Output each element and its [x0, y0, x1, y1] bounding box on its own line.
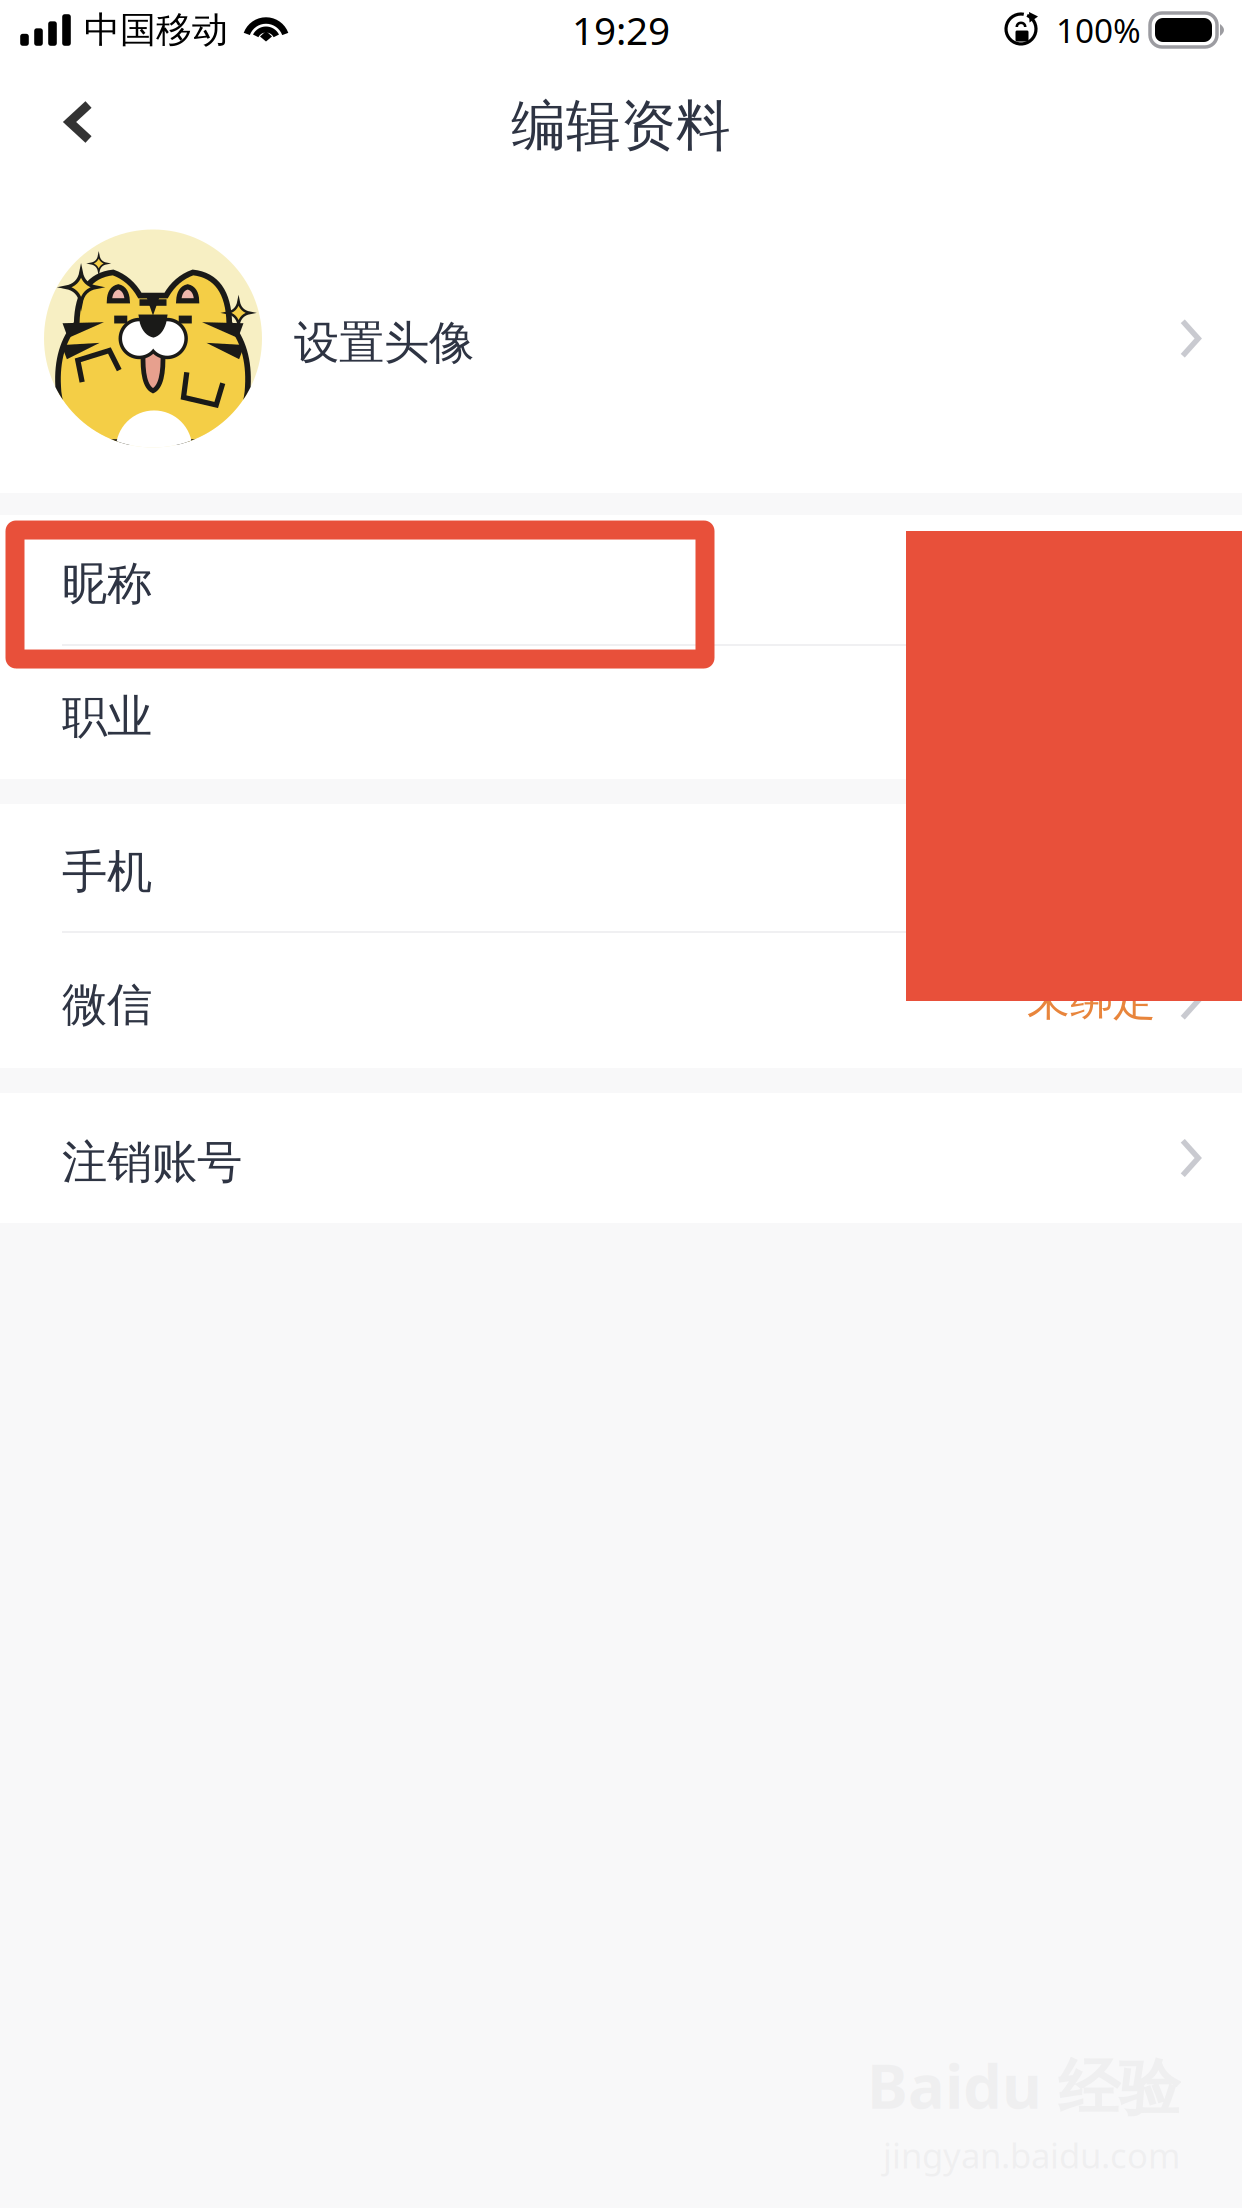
staticText: 编辑资料: [511, 92, 731, 159]
button[interactable]: 职业: [0, 646, 1242, 779]
button[interactable]: 注销账号: [0, 1093, 1242, 1223]
button[interactable]: 设置头像: [0, 184, 1242, 493]
staticText: 设置头像: [294, 315, 474, 371]
staticText: 微信: [62, 977, 152, 1033]
staticText: 100%: [1056, 8, 1141, 52]
button[interactable]: 手机: [0, 804, 1242, 931]
staticText: 职业: [62, 689, 152, 745]
staticText: 未绑定: [1027, 974, 1156, 1027]
button[interactable]: 昵称: [0, 515, 1242, 644]
staticText: Baidu 经验: [867, 2044, 1180, 2126]
staticText: 19:29: [572, 4, 670, 56]
button[interactable]: Back: [17, 60, 141, 184]
button[interactable]: 微信: [0, 933, 1242, 1068]
staticText: 手机: [62, 844, 152, 900]
staticText: 注销账号: [62, 1135, 242, 1190]
staticText: 昵称: [62, 556, 152, 612]
staticText: 中国移动: [84, 8, 228, 52]
